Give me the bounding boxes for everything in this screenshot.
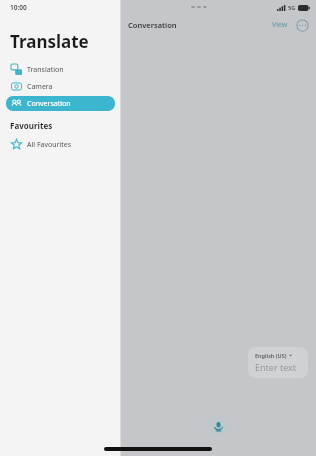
staticText: Camera: [27, 82, 53, 92]
button[interactable]: Record with microphone: [207, 415, 230, 438]
staticText: Conversation: [128, 20, 177, 30]
staticText: View: [272, 20, 288, 30]
staticText: Conversation: [27, 99, 71, 109]
staticText: English (US): [255, 352, 287, 359]
button[interactable]: View: [270, 18, 290, 32]
staticText: Enter text: [255, 361, 297, 373]
button[interactable]: Conversation: [6, 96, 115, 111]
staticText: Translation: [27, 65, 64, 75]
staticText: 5G: [288, 4, 296, 11]
button[interactable]: All Favourites: [6, 137, 115, 152]
staticText: Favourites: [10, 120, 53, 131]
button[interactable]: English (US): [248, 347, 308, 378]
staticText: Translate: [10, 30, 89, 53]
button[interactable]: Translation: [6, 62, 115, 77]
button[interactable]: Camera: [6, 79, 115, 94]
button[interactable]: More options: [296, 19, 309, 32]
staticText: 10:00: [10, 3, 27, 12]
staticText: All Favourites: [27, 140, 72, 150]
